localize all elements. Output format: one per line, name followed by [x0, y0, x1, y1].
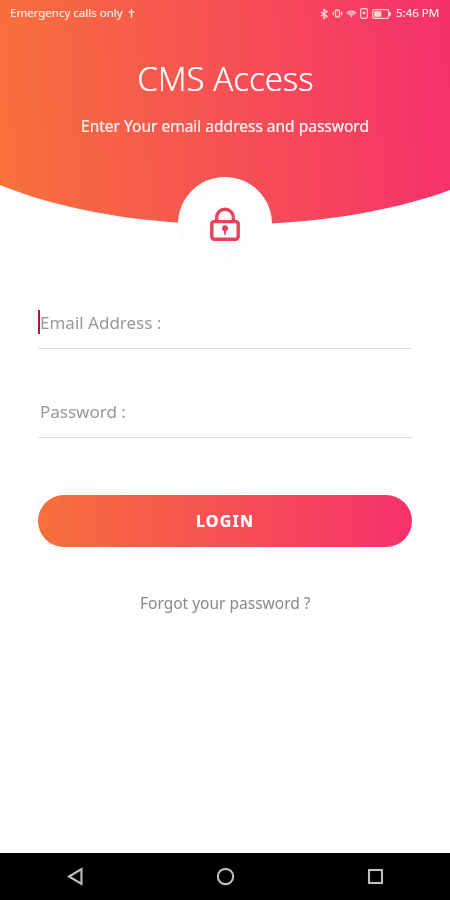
button[interactable]: Email Address :: [38, 310, 412, 349]
button[interactable]: Recent apps: [300, 853, 450, 900]
button[interactable]: LOGIN: [38, 495, 412, 547]
button[interactable]: Password :: [38, 400, 412, 438]
staticText: Forgot your password ?: [140, 592, 311, 613]
staticText: Enter Your email address and password: [81, 115, 369, 136]
staticText: 5:46 PM: [396, 5, 440, 21]
staticText: Emergency calls only: [10, 5, 123, 21]
button[interactable]: Forgot your password ?: [134, 586, 317, 619]
button[interactable]: Home: [150, 853, 300, 900]
staticText: Password :: [40, 400, 126, 423]
staticText: CMS Access: [137, 56, 314, 101]
staticText: LOGIN: [196, 510, 255, 532]
staticText: Email Address :: [40, 311, 162, 334]
button[interactable]: Back: [0, 853, 150, 900]
